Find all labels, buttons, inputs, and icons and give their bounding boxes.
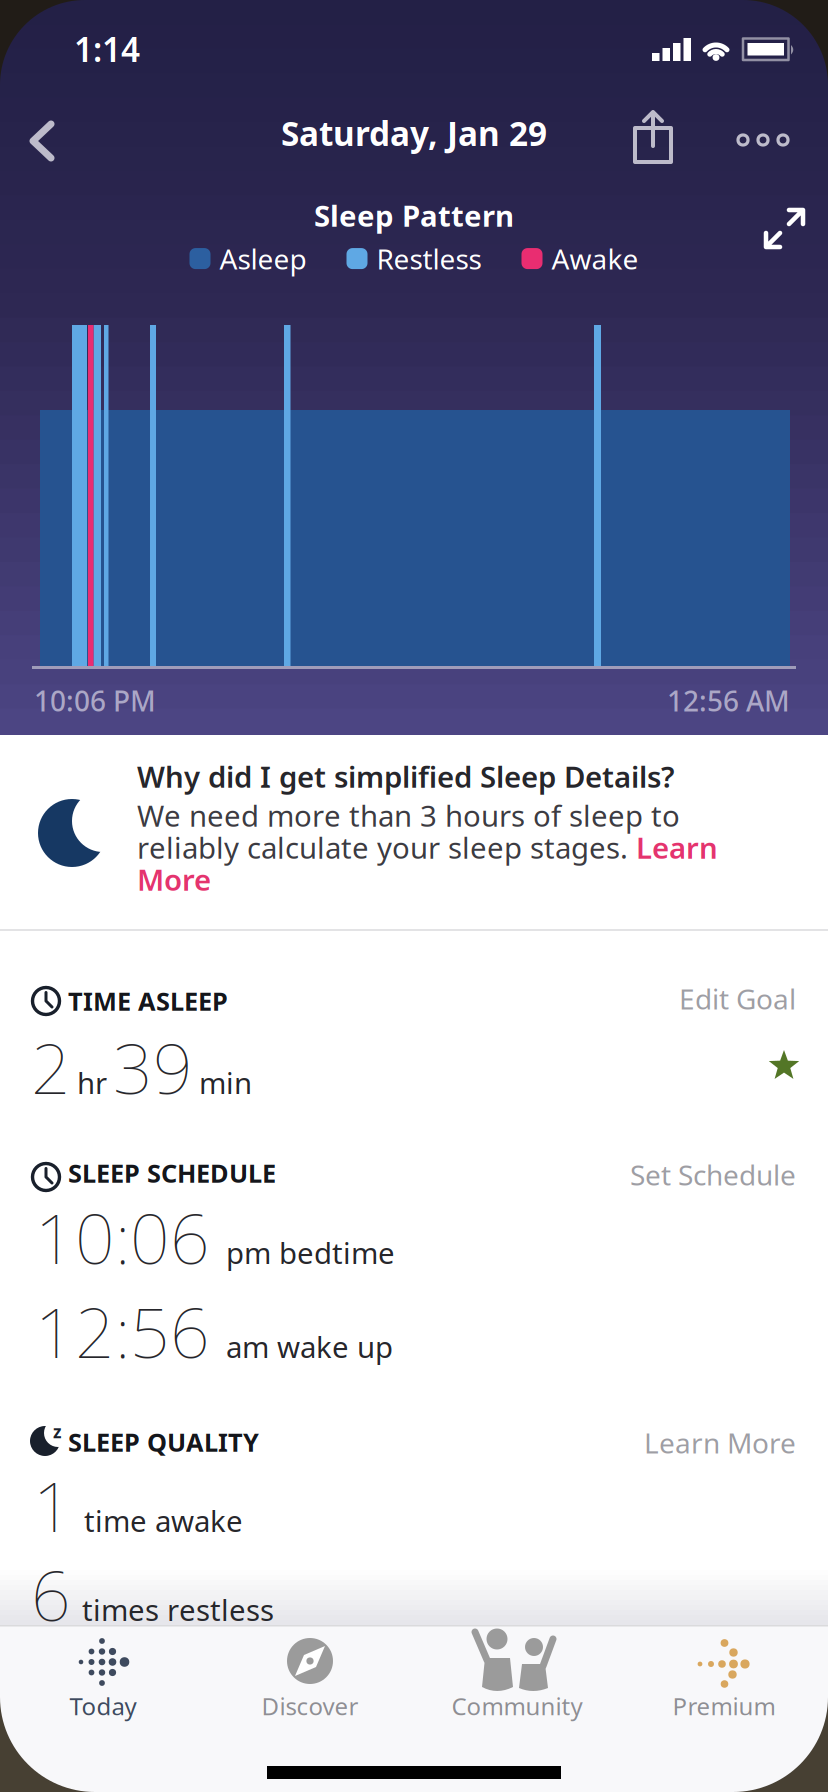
staticText: z (53, 1420, 62, 1443)
staticText: 1 (33, 1459, 73, 1551)
staticText: Set Schedule (630, 1156, 796, 1193)
staticText: am wake up (226, 1327, 393, 1366)
button[interactable] (0, 0, 828, 1792)
staticText: 6 (31, 1548, 71, 1640)
button[interactable]: Premium (0, 0, 828, 1792)
button[interactable]: Learn (636, 828, 718, 867)
staticText: reliably calculate your sleep stages. (137, 828, 636, 867)
staticText: Community (451, 1690, 582, 1722)
button[interactable]: Today (0, 0, 828, 1792)
staticText: 2 (31, 1021, 71, 1113)
staticText: Sleep Pattern (314, 196, 514, 235)
button[interactable]: More (137, 860, 211, 899)
staticText: Learn More (644, 1424, 796, 1461)
staticText: SLEEP QUALITY (68, 1425, 259, 1459)
staticText: pm bedtime (226, 1233, 395, 1272)
button[interactable]: Discover (0, 0, 828, 1792)
staticText: Asleep (219, 240, 306, 277)
button[interactable]: Edit Goal (0, 0, 796, 37)
staticText: TIME ASLEEP (68, 984, 228, 1018)
button[interactable] (0, 0, 828, 1792)
staticText: More (137, 860, 211, 899)
staticText: 12:56 AM (667, 682, 790, 719)
staticText: Awake (551, 240, 638, 277)
staticText: time awake (84, 1501, 243, 1540)
staticText: 12:56 (35, 1285, 210, 1377)
staticText: We need more than 3 hours of sleep to (137, 796, 680, 835)
button[interactable]: Learn More (0, 0, 796, 37)
staticText: Premium (672, 1690, 775, 1722)
staticText: hr (77, 1063, 107, 1102)
staticText: 39 (113, 1021, 193, 1113)
staticText: Learn (636, 828, 718, 867)
staticText: SLEEP SCHEDULE (68, 1156, 276, 1190)
staticText: 10:06 (35, 1191, 210, 1283)
staticText: Discover (261, 1690, 358, 1722)
button[interactable]: Community (0, 0, 828, 1792)
staticText: times restless (82, 1590, 274, 1629)
staticText: 1:14 (74, 27, 140, 71)
staticText: Today (69, 1690, 136, 1722)
staticText: Edit Goal (679, 980, 796, 1017)
staticText: Why did I get simplified Sleep Details? (137, 757, 675, 796)
button[interactable] (0, 0, 828, 1792)
staticText: min (199, 1063, 252, 1102)
staticText: Restless (376, 240, 481, 277)
staticText: 10:06 PM (34, 682, 156, 719)
staticText: Saturday, Jan 29 (281, 111, 547, 155)
button[interactable] (0, 0, 828, 1792)
button[interactable]: Set Schedule (0, 0, 796, 37)
